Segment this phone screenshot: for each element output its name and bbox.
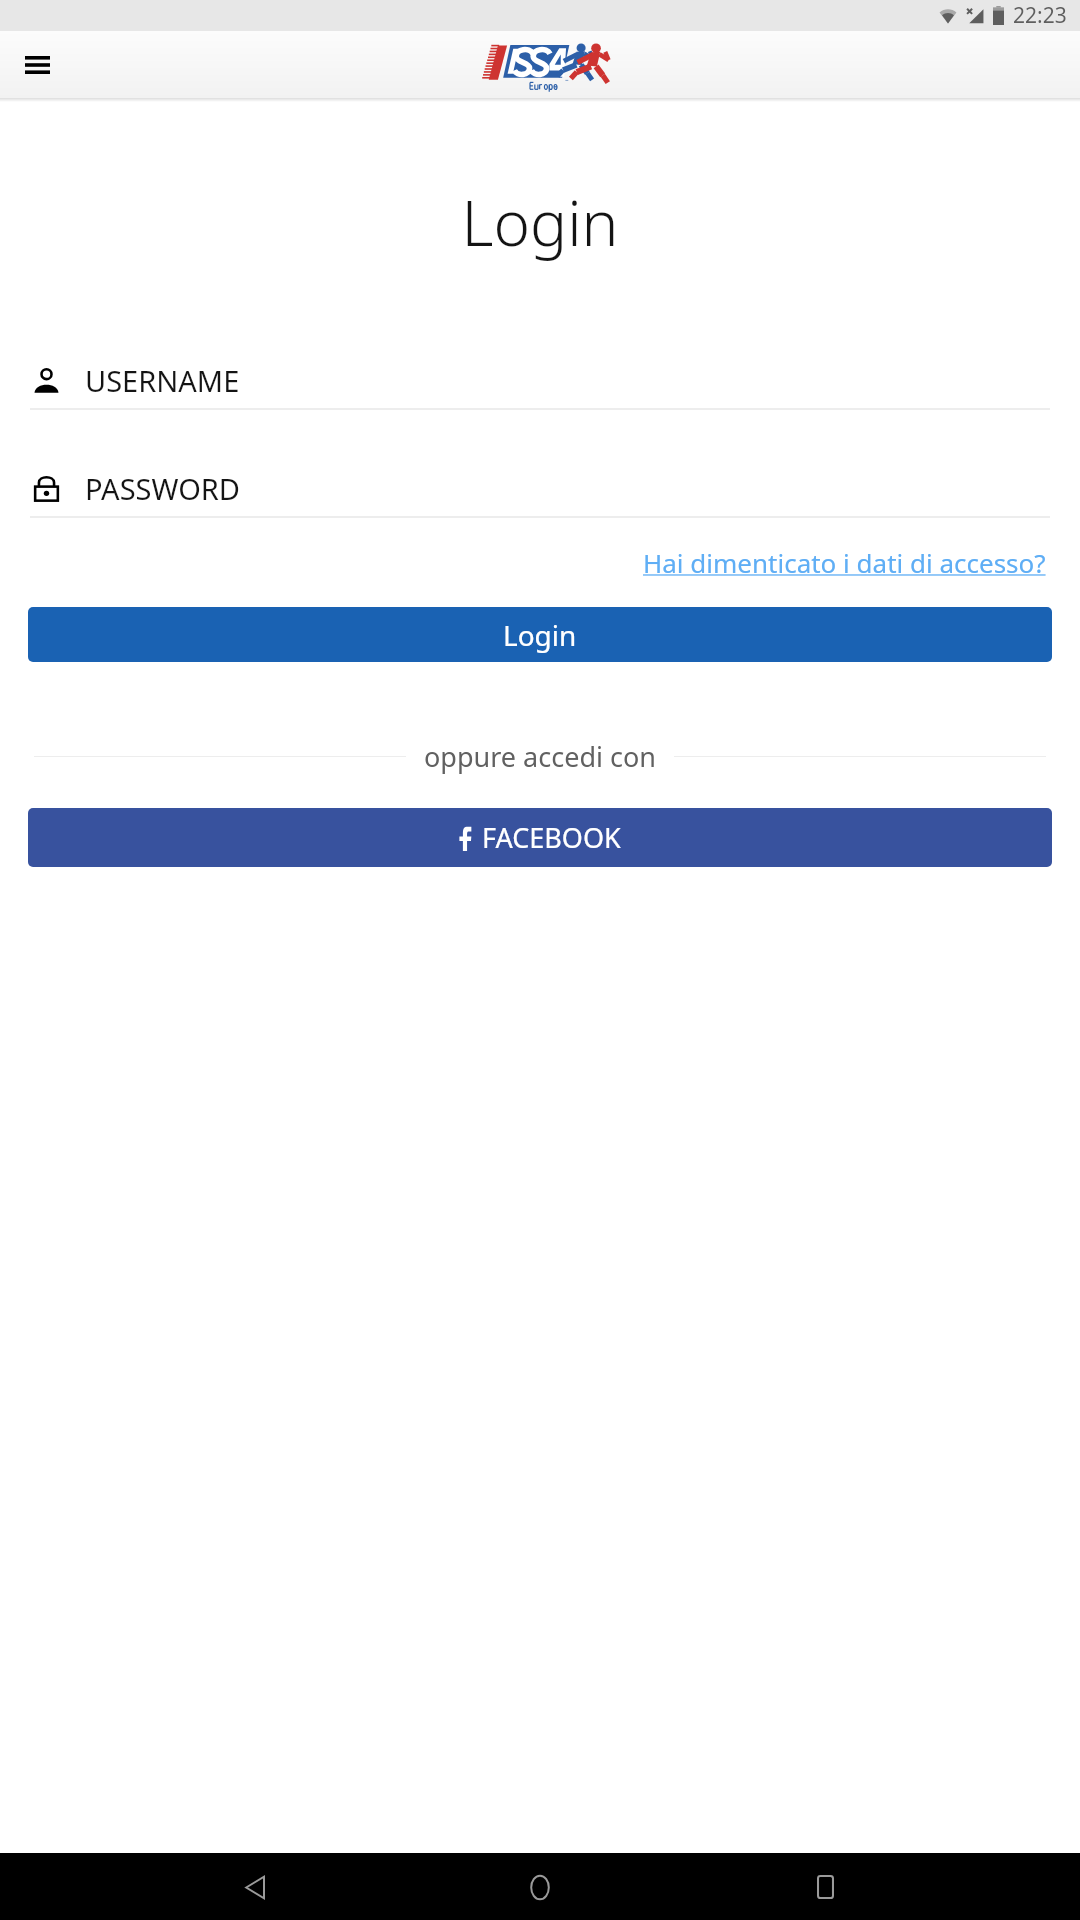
button[interactable]: Recent apps [795,1857,855,1917]
button[interactable]: Hai dimenticato i dati di accesso? [643,545,1046,580]
staticText: Login [503,616,577,654]
button[interactable]: USERNAME [30,352,1050,408]
staticText: FACEBOOK [482,819,621,856]
staticText: Login [0,180,1080,264]
button[interactable]: Login [28,607,1052,662]
button[interactable]: Back [225,1857,285,1917]
staticText: PASSWORD [85,469,241,508]
button[interactable]: Home [510,1857,570,1917]
button[interactable]: PASSWORD [30,460,1050,516]
staticText: 22:23 [1013,1,1067,30]
button[interactable]: Open navigation menu [13,40,62,89]
staticText: Hai dimenticato i dati di accesso? [643,545,1046,580]
staticText: USERNAME [85,361,240,400]
button[interactable]: FACEBOOK [28,808,1052,867]
staticText: oppure accedi con [424,738,656,775]
